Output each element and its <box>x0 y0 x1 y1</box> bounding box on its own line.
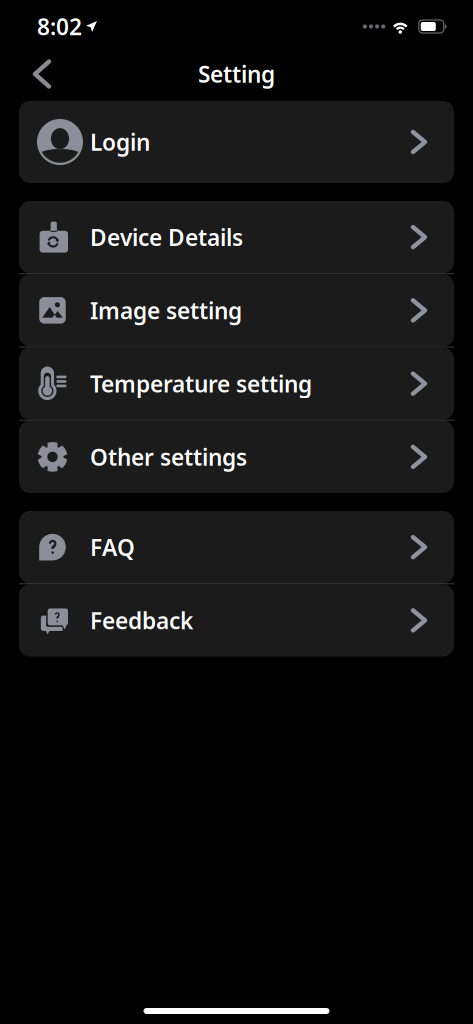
button[interactable]: Login <box>19 101 454 183</box>
button[interactable]: Temperature setting <box>19 347 454 420</box>
staticText: 8:02 <box>37 11 82 41</box>
staticText: Image setting <box>90 295 242 325</box>
staticText: Setting <box>198 59 275 89</box>
button[interactable]: FAQ <box>19 511 454 583</box>
button[interactable]: Back <box>19 51 65 96</box>
staticText: Device Details <box>90 222 243 252</box>
staticText: Other settings <box>90 442 247 472</box>
button[interactable]: Image setting <box>19 274 454 346</box>
staticText: FAQ <box>90 532 135 562</box>
button[interactable]: Device Details <box>19 201 454 273</box>
staticText: Feedback <box>90 605 193 635</box>
button[interactable]: Feedback <box>19 584 454 656</box>
staticText: Login <box>90 127 150 157</box>
staticText: Temperature setting <box>90 369 312 399</box>
button[interactable]: Other settings <box>19 421 454 493</box>
